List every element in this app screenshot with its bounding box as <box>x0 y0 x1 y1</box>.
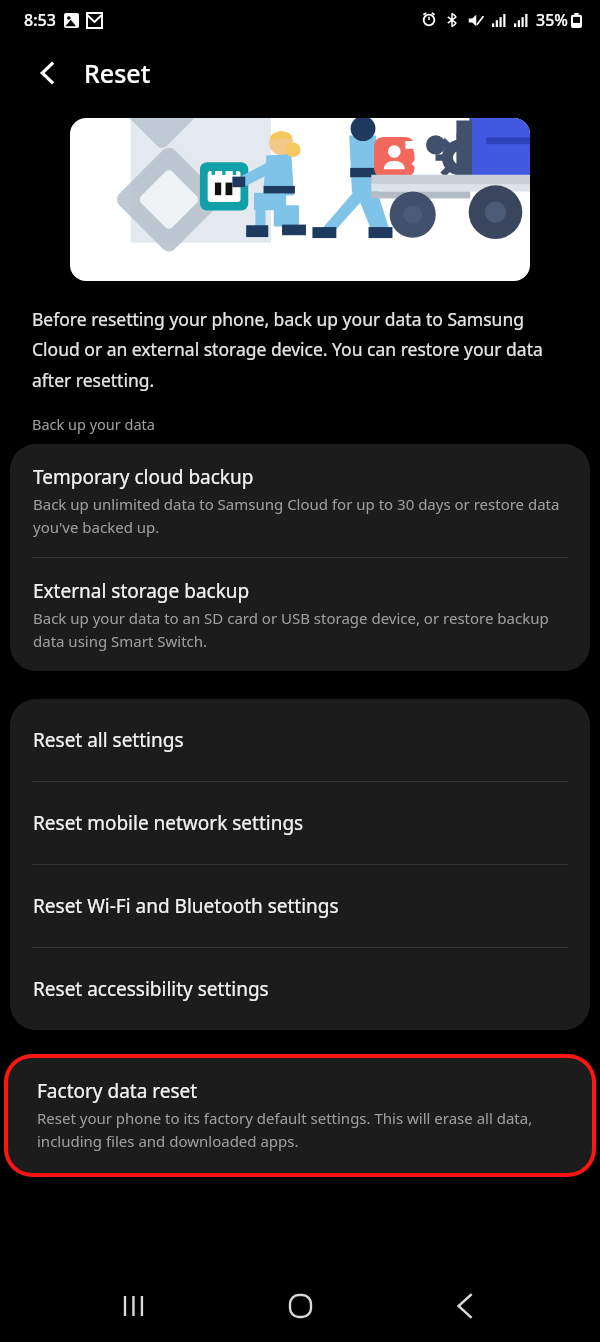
staticText: External storage backup <box>33 578 250 604</box>
button[interactable]: Reset accessibility settings <box>10 948 590 1030</box>
staticText: Back up your data to an SD card or USB s… <box>33 608 570 651</box>
staticText: Before resetting your phone, back up you… <box>32 307 568 392</box>
button[interactable]: Recent apps <box>105 1276 165 1336</box>
button[interactable]: Home <box>270 1276 330 1336</box>
staticText: Reset Wi-Fi and Bluetooth settings <box>33 893 339 919</box>
button[interactable]: Factory data reset <box>8 1058 592 1173</box>
button[interactable]: Back <box>26 51 70 95</box>
staticText: Factory data reset <box>37 1078 198 1104</box>
staticText: Reset accessibility settings <box>33 976 269 1002</box>
button[interactable]: Temporary cloud backup <box>10 444 590 557</box>
button[interactable]: External storage backup <box>10 558 590 671</box>
staticText: Temporary cloud backup <box>33 464 254 490</box>
staticText: Reset your phone to its factory default … <box>37 1108 568 1151</box>
staticText: Reset <box>84 56 151 90</box>
staticText: Back up your data <box>32 414 155 434</box>
button[interactable]: Reset mobile network settings <box>10 782 590 864</box>
button[interactable]: Reset Wi-Fi and Bluetooth settings <box>10 865 590 947</box>
button[interactable]: Reset all settings <box>10 699 590 781</box>
button[interactable]: Back <box>435 1276 495 1336</box>
staticText: Back up unlimited data to Samsung Cloud … <box>33 494 570 537</box>
staticText: Reset mobile network settings <box>33 810 304 836</box>
staticText: Reset all settings <box>33 727 184 753</box>
staticText: 35% <box>536 9 568 31</box>
staticText: 8:53 <box>24 9 56 31</box>
